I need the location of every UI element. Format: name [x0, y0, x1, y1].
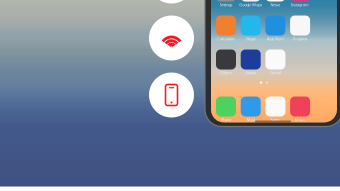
staticText: News — [270, 2, 280, 7]
staticText: Google Maps — [239, 2, 262, 7]
staticText: Calculator — [217, 36, 235, 41]
staticText: App Store — [267, 36, 284, 41]
staticText: Settings — [219, 2, 232, 7]
staticText: Dropbox — [293, 36, 308, 41]
staticText: Phone — [221, 117, 231, 122]
staticText: Mail — [247, 117, 255, 122]
staticText: Skype — [246, 36, 256, 41]
staticText: Instagram — [291, 2, 309, 7]
staticText: Safari — [270, 117, 280, 122]
staticText: Music — [295, 117, 306, 122]
button[interactable]: Phone — [149, 72, 194, 117]
staticText: Gmail — [270, 70, 281, 75]
button[interactable]: Bluetooth — [149, 0, 194, 3]
staticText: Sound — [246, 70, 256, 75]
button[interactable]: Wi-Fi — [149, 15, 194, 60]
staticText: DStore — [220, 70, 232, 75]
